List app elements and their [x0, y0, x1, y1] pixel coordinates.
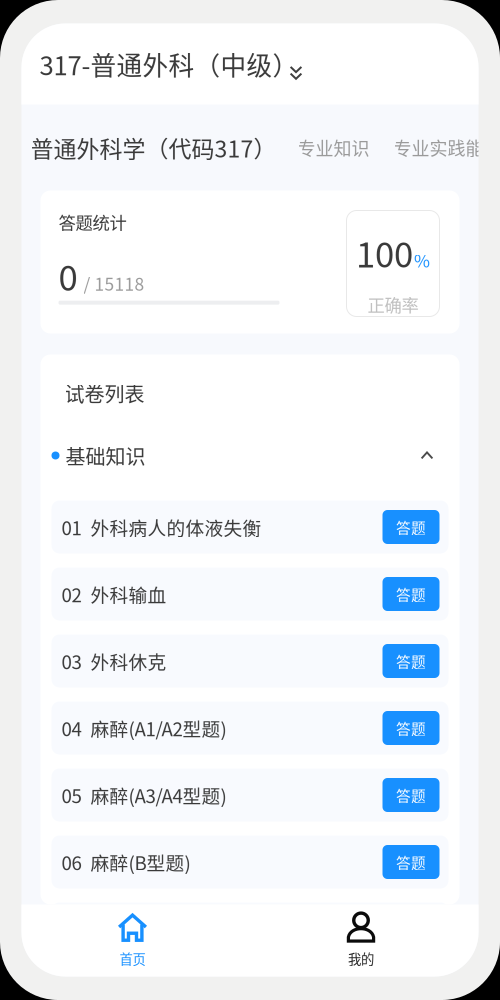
button[interactable]: 317-普通外科（中级） [21, 23, 478, 104]
staticText: 普通外科学（代码317） [30, 131, 276, 164]
button[interactable]: 04 [51, 701, 448, 754]
staticText: 专业知识 [297, 134, 369, 161]
staticText: 01 [61, 513, 81, 540]
staticText: 专业实践能 [393, 134, 483, 161]
staticText: 0 [58, 250, 77, 301]
button[interactable]: 专业知识 [297, 134, 369, 161]
staticText: 外科休克 [90, 647, 166, 674]
staticText: 基础知识 [65, 441, 145, 470]
staticText: 100 [356, 227, 413, 278]
button[interactable]: 普通外科学（代码317） [30, 131, 276, 164]
button[interactable]: 02 [51, 567, 448, 620]
button[interactable]: 首页 [21, 904, 243, 976]
staticText: 麻醉(B型题) [90, 848, 190, 875]
staticText: 答题 [396, 583, 426, 605]
staticText: 答题统计 [58, 209, 126, 234]
staticText: 试卷列表 [64, 378, 144, 407]
button[interactable]: 05 [51, 768, 448, 821]
staticText: 答题 [396, 851, 426, 873]
button[interactable]: 03 [51, 634, 448, 687]
staticText: 06 [61, 848, 81, 875]
staticText: / 15118 [83, 271, 144, 296]
staticText: 重症监护 [90, 915, 166, 942]
staticText: 外科病人的体液失衡 [90, 513, 261, 540]
button[interactable]: 专业实践能 [393, 134, 483, 161]
staticText: 麻醉(A1/A2型题) [90, 714, 226, 741]
staticText: 03 [61, 647, 81, 674]
staticText: 04 [61, 714, 81, 741]
staticText: 首页 [119, 949, 145, 968]
staticText: 02 [61, 580, 81, 607]
button[interactable]: 01 [51, 500, 448, 553]
button[interactable]: 07 [51, 902, 448, 955]
staticText: 我的 [348, 949, 374, 968]
staticText: 317-普通外科（中级） [39, 45, 298, 83]
staticText: 05 [61, 781, 81, 808]
staticText: % [414, 247, 430, 273]
staticText: 答题 [396, 784, 426, 806]
staticText: 麻醉(A3/A4型题) [90, 781, 226, 808]
staticText: 正确率 [367, 291, 418, 317]
staticText: 答题 [396, 650, 426, 672]
staticText: 外科输血 [90, 580, 166, 607]
staticText: 答题 [396, 717, 426, 739]
button[interactable]: 06 [51, 835, 448, 888]
button[interactable]: 我的 [243, 904, 478, 976]
button[interactable]: 基础知识 [40, 431, 459, 479]
staticText: 答题 [396, 516, 426, 538]
